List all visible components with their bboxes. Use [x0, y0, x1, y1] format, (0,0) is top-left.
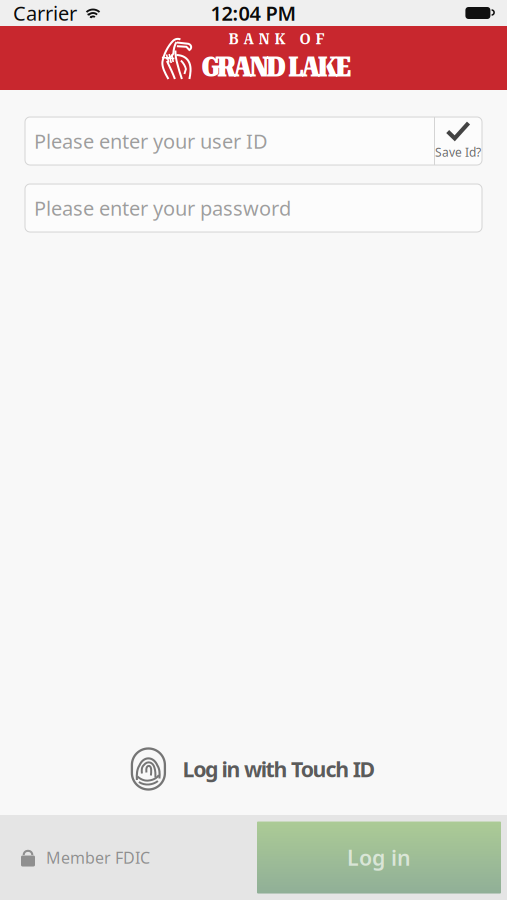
staticText: GRAND LAKE: [201, 49, 352, 83]
staticText: Carrier: [13, 0, 77, 26]
button[interactable]: Log in with Touch ID: [123, 743, 384, 795]
staticText: 12:04 PM: [210, 0, 296, 26]
staticText: Please enter your password: [34, 195, 291, 221]
button[interactable]: Log in: [257, 821, 501, 893]
staticText: BANK OF: [228, 29, 324, 48]
staticText: Log in with Touch ID: [182, 755, 376, 783]
staticText: Please enter your user ID: [34, 128, 268, 154]
staticText: Log in: [347, 843, 411, 872]
button[interactable]: Save Id: [434, 117, 482, 165]
staticText: Member FDIC: [46, 847, 150, 868]
staticText: Save Id?: [435, 144, 481, 160]
